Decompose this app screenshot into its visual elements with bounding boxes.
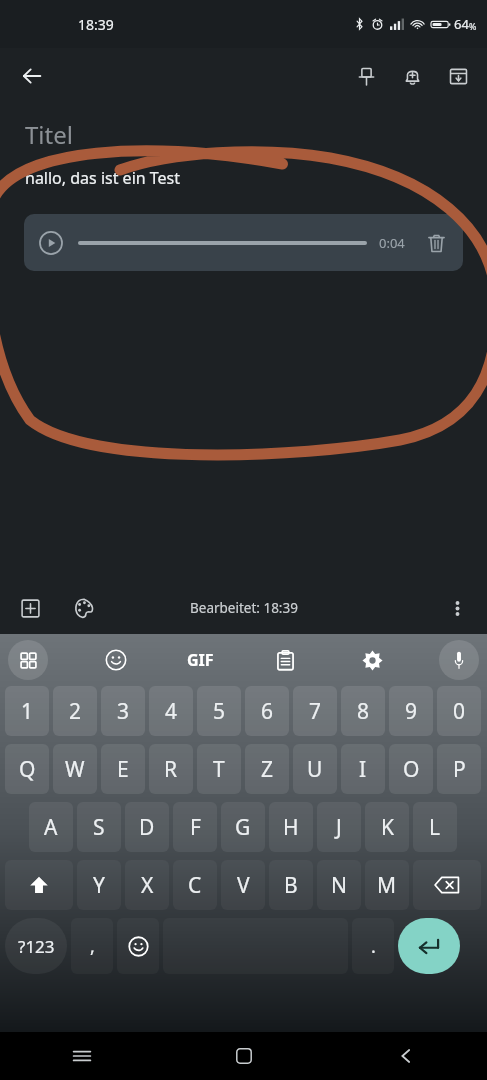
button[interactable]: Play recording <box>24 214 463 271</box>
staticText: 6 <box>261 697 274 726</box>
button[interactable]: 9 <box>389 686 433 736</box>
staticText: Q <box>19 755 36 784</box>
button[interactable]: GIF <box>183 645 218 675</box>
button[interactable]: W <box>53 744 97 794</box>
staticText: GIF <box>187 649 214 671</box>
button[interactable]: 5 <box>197 686 241 736</box>
staticText: % <box>469 20 477 32</box>
staticText: , <box>90 934 95 959</box>
staticText: K <box>381 813 394 842</box>
staticText: 4 <box>165 697 178 726</box>
button[interactable]: V <box>221 860 265 910</box>
staticText: M <box>377 871 397 900</box>
button[interactable]: Z <box>245 744 289 794</box>
staticText: Bearbeitet: 18:39 <box>190 599 298 617</box>
button[interactable]: Back <box>10 54 54 98</box>
button[interactable]: I <box>341 744 385 794</box>
button[interactable]: . <box>352 918 394 974</box>
button[interactable]: Enter <box>398 918 460 974</box>
staticText: A <box>44 813 58 842</box>
staticText: O <box>403 755 420 784</box>
button[interactable]: , <box>71 918 113 974</box>
button[interactable]: O <box>389 744 433 794</box>
button[interactable]: Recent apps <box>60 1034 104 1078</box>
button[interactable]: 2 <box>53 686 97 736</box>
staticText: 7 <box>309 697 322 726</box>
staticText: 1 <box>21 697 34 726</box>
button[interactable]: A <box>29 802 73 852</box>
button[interactable]: Emoji <box>96 640 136 680</box>
button[interactable]: M <box>365 860 409 910</box>
button[interactable]: Clipboard <box>265 640 305 680</box>
button[interactable]: Voice input <box>439 640 479 680</box>
button[interactable]: 7 <box>293 686 337 736</box>
button[interactable]: R <box>149 744 193 794</box>
button[interactable]: C <box>173 860 217 910</box>
button[interactable]: F <box>173 802 217 852</box>
staticText: H <box>283 813 299 842</box>
button[interactable]: Home <box>222 1034 266 1078</box>
button[interactable]: E <box>101 744 145 794</box>
staticText: L <box>429 813 441 842</box>
staticText: W <box>65 755 85 784</box>
button[interactable]: Pin note <box>343 53 389 99</box>
button[interactable]: J <box>317 802 361 852</box>
staticText: N <box>331 871 347 900</box>
button[interactable]: Shift <box>5 860 73 910</box>
staticText: U <box>307 755 323 784</box>
button[interactable]: G <box>221 802 265 852</box>
button[interactable]: More options <box>435 586 479 630</box>
staticText: C <box>188 871 202 900</box>
staticText: G <box>235 813 251 842</box>
button[interactable]: Archive <box>435 53 481 99</box>
staticText: Y <box>93 871 105 900</box>
button[interactable]: Add attachment <box>8 586 52 630</box>
button[interactable]: 8 <box>341 686 385 736</box>
button[interactable]: X <box>125 860 169 910</box>
button[interactable]: P <box>437 744 481 794</box>
button[interactable]: 1 <box>5 686 49 736</box>
button[interactable]: U <box>293 744 337 794</box>
button[interactable]: N <box>317 860 361 910</box>
button[interactable]: Back <box>384 1034 428 1078</box>
staticText: S <box>93 813 105 842</box>
staticText: 18:39 <box>78 15 114 34</box>
button[interactable]: S <box>77 802 121 852</box>
button[interactable]: Emoji <box>117 918 159 974</box>
staticText: E <box>117 755 129 784</box>
button[interactable]: T <box>197 744 241 794</box>
staticText: X <box>141 871 154 900</box>
button[interactable]: Space <box>163 918 348 974</box>
button[interactable]: 3 <box>101 686 145 736</box>
staticText: F <box>190 813 201 842</box>
button[interactable]: Change colour <box>62 586 106 630</box>
button[interactable]: Keyboard switcher <box>8 640 48 680</box>
staticText: hallo, das ist ein Test <box>25 167 181 189</box>
button[interactable]: D <box>125 802 169 852</box>
button[interactable]: K <box>365 802 409 852</box>
button[interactable]: Add reminder <box>389 53 435 99</box>
button[interactable]: L <box>413 802 457 852</box>
button[interactable]: Backspace <box>413 860 481 910</box>
button[interactable]: 4 <box>149 686 193 736</box>
button[interactable]: B <box>269 860 313 910</box>
staticText: 3 <box>117 697 130 726</box>
button[interactable]: Play recording <box>36 228 66 258</box>
button[interactable]: ?123 <box>5 918 67 974</box>
staticText: B <box>284 871 298 900</box>
button[interactable]: Q <box>5 744 49 794</box>
button[interactable]: 0 <box>437 686 481 736</box>
staticText: J <box>336 813 342 842</box>
button[interactable]: Y <box>77 860 121 910</box>
staticText: P <box>453 755 466 784</box>
staticText: 5 <box>213 697 226 726</box>
button[interactable]: H <box>269 802 313 852</box>
staticText: 0 <box>453 697 466 726</box>
staticText: 8 <box>357 697 370 726</box>
staticText: ?123 <box>18 935 55 958</box>
button[interactable]: Keyboard settings <box>352 640 392 680</box>
staticText: V <box>237 871 250 900</box>
staticText: I <box>359 755 367 784</box>
button[interactable]: Delete recording <box>421 228 451 258</box>
button[interactable]: 6 <box>245 686 289 736</box>
